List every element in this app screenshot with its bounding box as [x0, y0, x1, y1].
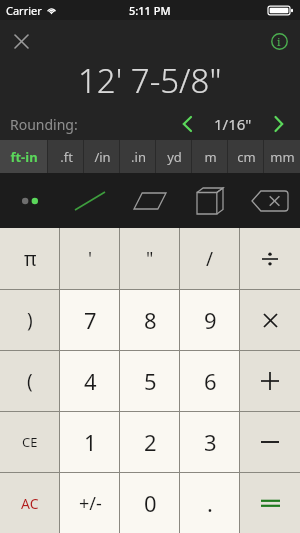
button[interactable]: 6 [180, 351, 240, 411]
button[interactable]: 4 [60, 351, 120, 411]
button[interactable]: 7 [60, 290, 120, 350]
button[interactable]: . [180, 473, 240, 533]
staticText: ( [27, 368, 33, 394]
staticText: 12' 7-5/8" [78, 58, 222, 103]
staticText: 3 [204, 427, 217, 457]
button[interactable] [240, 228, 300, 289]
staticText: ft-in [10, 148, 38, 166]
button[interactable]: π [0, 228, 60, 289]
button[interactable]: yd [156, 140, 192, 173]
button[interactable]: +/- [60, 473, 120, 533]
staticText: 1 [84, 427, 97, 457]
staticText: /in [94, 148, 111, 166]
button[interactable]: Backspace [240, 173, 300, 228]
button[interactable]: ) [0, 290, 60, 350]
button[interactable]: 1 [60, 412, 120, 472]
staticText: " [146, 246, 154, 271]
button[interactable]: .in [120, 140, 156, 173]
button[interactable]: ' [60, 228, 120, 289]
button[interactable]: 5 [120, 351, 180, 411]
button[interactable]: Page indicator [0, 173, 60, 228]
button[interactable]: ( [0, 351, 60, 411]
button[interactable]: Volume mode [180, 173, 240, 228]
staticText: Carrier [6, 3, 42, 18]
button[interactable]: / [180, 228, 240, 289]
staticText: +/- [79, 491, 102, 516]
button[interactable]: Info [264, 26, 294, 56]
staticText: 1/16" [214, 114, 252, 134]
staticText: π [24, 246, 37, 272]
button[interactable]: 9 [180, 290, 240, 350]
staticText: AC [21, 494, 39, 513]
staticText: 6 [204, 366, 217, 396]
button[interactable]: mm [264, 140, 300, 173]
staticText: m [204, 148, 217, 166]
button[interactable] [240, 473, 300, 533]
button[interactable]: CE [0, 412, 60, 472]
button[interactable]: Area mode [120, 173, 180, 228]
button[interactable]: ft-in [0, 140, 48, 173]
staticText: 8 [144, 305, 157, 335]
button[interactable]: " [120, 228, 180, 289]
staticText: . [207, 488, 213, 518]
button[interactable]: AC [0, 473, 60, 533]
button[interactable]: 8 [120, 290, 180, 350]
staticText: mm [270, 148, 295, 166]
staticText: Rounding: [10, 115, 78, 134]
button[interactable]: 2 [120, 412, 180, 472]
button[interactable]: Close [6, 26, 36, 56]
staticText: 5:11 PM [129, 3, 171, 18]
staticText: CE [22, 433, 38, 451]
button[interactable]: Decrease rounding [174, 109, 200, 139]
button[interactable]: m [192, 140, 228, 173]
staticText: .ft [60, 148, 73, 166]
staticText: 9 [204, 305, 217, 335]
button[interactable]: Length mode [60, 173, 120, 228]
staticText: / [206, 246, 214, 272]
staticText: 4 [84, 366, 97, 396]
button[interactable] [240, 351, 300, 411]
staticText: 0 [144, 488, 157, 518]
staticText: yd [167, 148, 182, 166]
button[interactable]: Increase rounding [266, 109, 292, 139]
staticText: ' [88, 246, 93, 271]
button[interactable]: /in [84, 140, 120, 173]
staticText: .in [131, 148, 146, 166]
button[interactable] [240, 290, 300, 350]
button[interactable]: 3 [180, 412, 240, 472]
button[interactable] [240, 412, 300, 472]
button[interactable]: .ft [48, 140, 84, 173]
staticText: cm [237, 148, 256, 166]
staticText: ) [27, 307, 33, 333]
staticText: i [277, 34, 281, 49]
button[interactable]: 0 [120, 473, 180, 533]
staticText: 2 [144, 427, 157, 457]
staticText: 7 [84, 305, 97, 335]
staticText: 5 [144, 366, 157, 396]
button[interactable]: cm [228, 140, 264, 173]
